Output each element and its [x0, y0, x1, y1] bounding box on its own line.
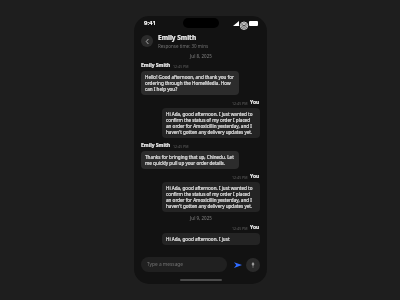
button[interactable]: Send: [231, 258, 244, 271]
button[interactable]: 12:45 PM: [141, 173, 260, 212]
button[interactable]: 12:45 PM: [141, 99, 260, 138]
staticText: Hi Ada, good afternoon. I just wanted to…: [166, 185, 256, 209]
staticText: 12:45 PM: [173, 64, 189, 69]
staticText: 12:45 PM: [173, 144, 189, 149]
button[interactable]: Voice message: [246, 258, 260, 272]
button[interactable]: Back: [141, 35, 153, 47]
staticText: Emily Smith: [141, 62, 171, 69]
staticText: Response time: 30 mins: [158, 43, 209, 49]
button[interactable]: Emily Smith: [141, 142, 260, 169]
button[interactable]: Emily Smith: [141, 62, 260, 95]
staticText: You: [250, 224, 260, 231]
staticText: 12:45 PM: [232, 101, 248, 106]
staticText: Type a message: [147, 261, 183, 268]
staticText: Hello! Good afternoon, and thank you for…: [145, 74, 235, 92]
button[interactable]: Type a message: [141, 257, 227, 272]
staticText: 12:45 PM: [232, 175, 248, 180]
staticText: You: [250, 173, 260, 180]
staticText: Hi Ada, good afternoon. I just wanted to…: [166, 111, 256, 135]
staticText: Jul 9, 2025: [190, 215, 212, 221]
staticText: 9:41: [144, 19, 156, 27]
staticText: 12:45 PM: [232, 226, 248, 231]
staticText: You: [250, 99, 260, 106]
staticText: Emily Smith: [158, 33, 197, 42]
staticText: Hi Ada, good afternoon. I just: [166, 236, 230, 242]
staticText: Thanks for bringing that up, Chinedu. Le…: [145, 154, 235, 166]
staticText: Jul 8, 2025: [190, 53, 212, 59]
staticText: Emily Smith: [141, 142, 171, 149]
button[interactable]: 12:45 PM: [141, 224, 260, 245]
